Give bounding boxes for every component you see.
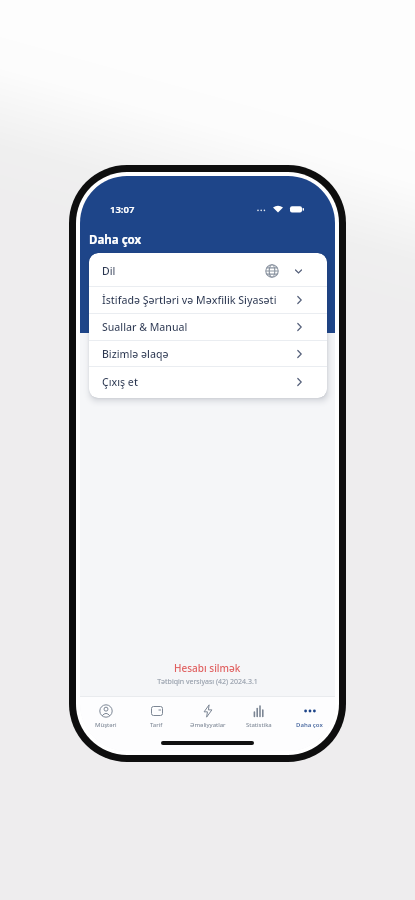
staticText: Əməliyyatlar xyxy=(190,721,226,729)
staticText: İstifadə Şərtləri və Məxfilik Siyasəti xyxy=(102,293,277,307)
staticText: Çıxış et xyxy=(102,375,138,389)
staticText: Müştəri xyxy=(95,721,117,729)
button[interactable]: Statistika xyxy=(233,704,284,729)
button[interactable]: Hesabı silmək xyxy=(80,661,335,675)
staticText: Dil xyxy=(102,264,116,278)
button[interactable]: Müştəri xyxy=(80,704,131,729)
staticText: Daha çox xyxy=(296,721,323,729)
button[interactable]: Çıxış et xyxy=(89,367,327,396)
button[interactable]: Bizimlə əlaqə xyxy=(89,341,327,366)
staticText: Suallar & Manual xyxy=(102,320,188,334)
button[interactable]: Suallar & Manual xyxy=(89,314,327,340)
button[interactable]: İstifadə Şərtləri və Məxfilik Siyasəti xyxy=(89,287,327,313)
button[interactable]: Əməliyyatlar xyxy=(182,704,233,729)
staticText: Hesabı silmək xyxy=(174,661,241,675)
staticText: 13:07 xyxy=(110,203,135,216)
button[interactable]: Dil xyxy=(89,253,327,286)
staticText: Daha çox xyxy=(89,232,142,248)
staticText: Tarif xyxy=(150,721,163,729)
staticText: Tətbiqin versiyası (42) 2024.3.1 xyxy=(80,677,335,687)
button[interactable]: Tarif xyxy=(131,704,182,729)
staticText: Bizimlə əlaqə xyxy=(102,347,169,361)
button[interactable]: Daha çox xyxy=(284,704,335,729)
staticText: Statistika xyxy=(246,721,272,729)
